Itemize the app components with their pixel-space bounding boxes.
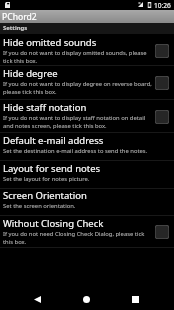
staticText: Layout for send notes bbox=[3, 162, 101, 175]
staticText: If you do not want to display staff nota… bbox=[3, 114, 153, 130]
button[interactable]: Default e-mail address bbox=[0, 133, 174, 161]
staticText: Default e-mail address bbox=[3, 134, 104, 147]
staticText: Set the destination e-mail address to se… bbox=[3, 147, 148, 155]
staticText: Hide staff notation bbox=[3, 101, 87, 114]
button[interactable]: Home bbox=[71, 284, 102, 310]
button[interactable]: Recents bbox=[120, 284, 151, 310]
staticText: Settings bbox=[3, 24, 28, 32]
button[interactable]: Back bbox=[22, 284, 53, 310]
button[interactable]: Screen Orientation bbox=[0, 188, 174, 216]
staticText: Without Closing Check bbox=[3, 217, 104, 230]
staticText: If you do not need Closing Check Dialog,… bbox=[3, 230, 153, 246]
staticText: If you do not want to display degree on … bbox=[3, 80, 153, 96]
button[interactable]: Hide degree bbox=[0, 66, 174, 100]
staticText: 10:26 bbox=[154, 1, 171, 10]
staticText: If you do not want to display omitted so… bbox=[3, 49, 153, 65]
staticText: PChord2 bbox=[2, 11, 37, 23]
staticText: Set the layout for notes picture. bbox=[3, 175, 90, 183]
staticText: Hide omitted sounds bbox=[3, 36, 97, 49]
button[interactable]: Hide staff notation bbox=[0, 100, 174, 133]
staticText: Hide degree bbox=[3, 67, 58, 80]
button[interactable]: Layout for send notes bbox=[0, 161, 174, 189]
button[interactable]: Hide omitted sounds bbox=[0, 35, 174, 66]
staticText: Screen Orientation bbox=[3, 189, 87, 202]
staticText: Set the screen orientation. bbox=[3, 202, 76, 210]
button[interactable]: Without Closing Check bbox=[0, 216, 174, 248]
